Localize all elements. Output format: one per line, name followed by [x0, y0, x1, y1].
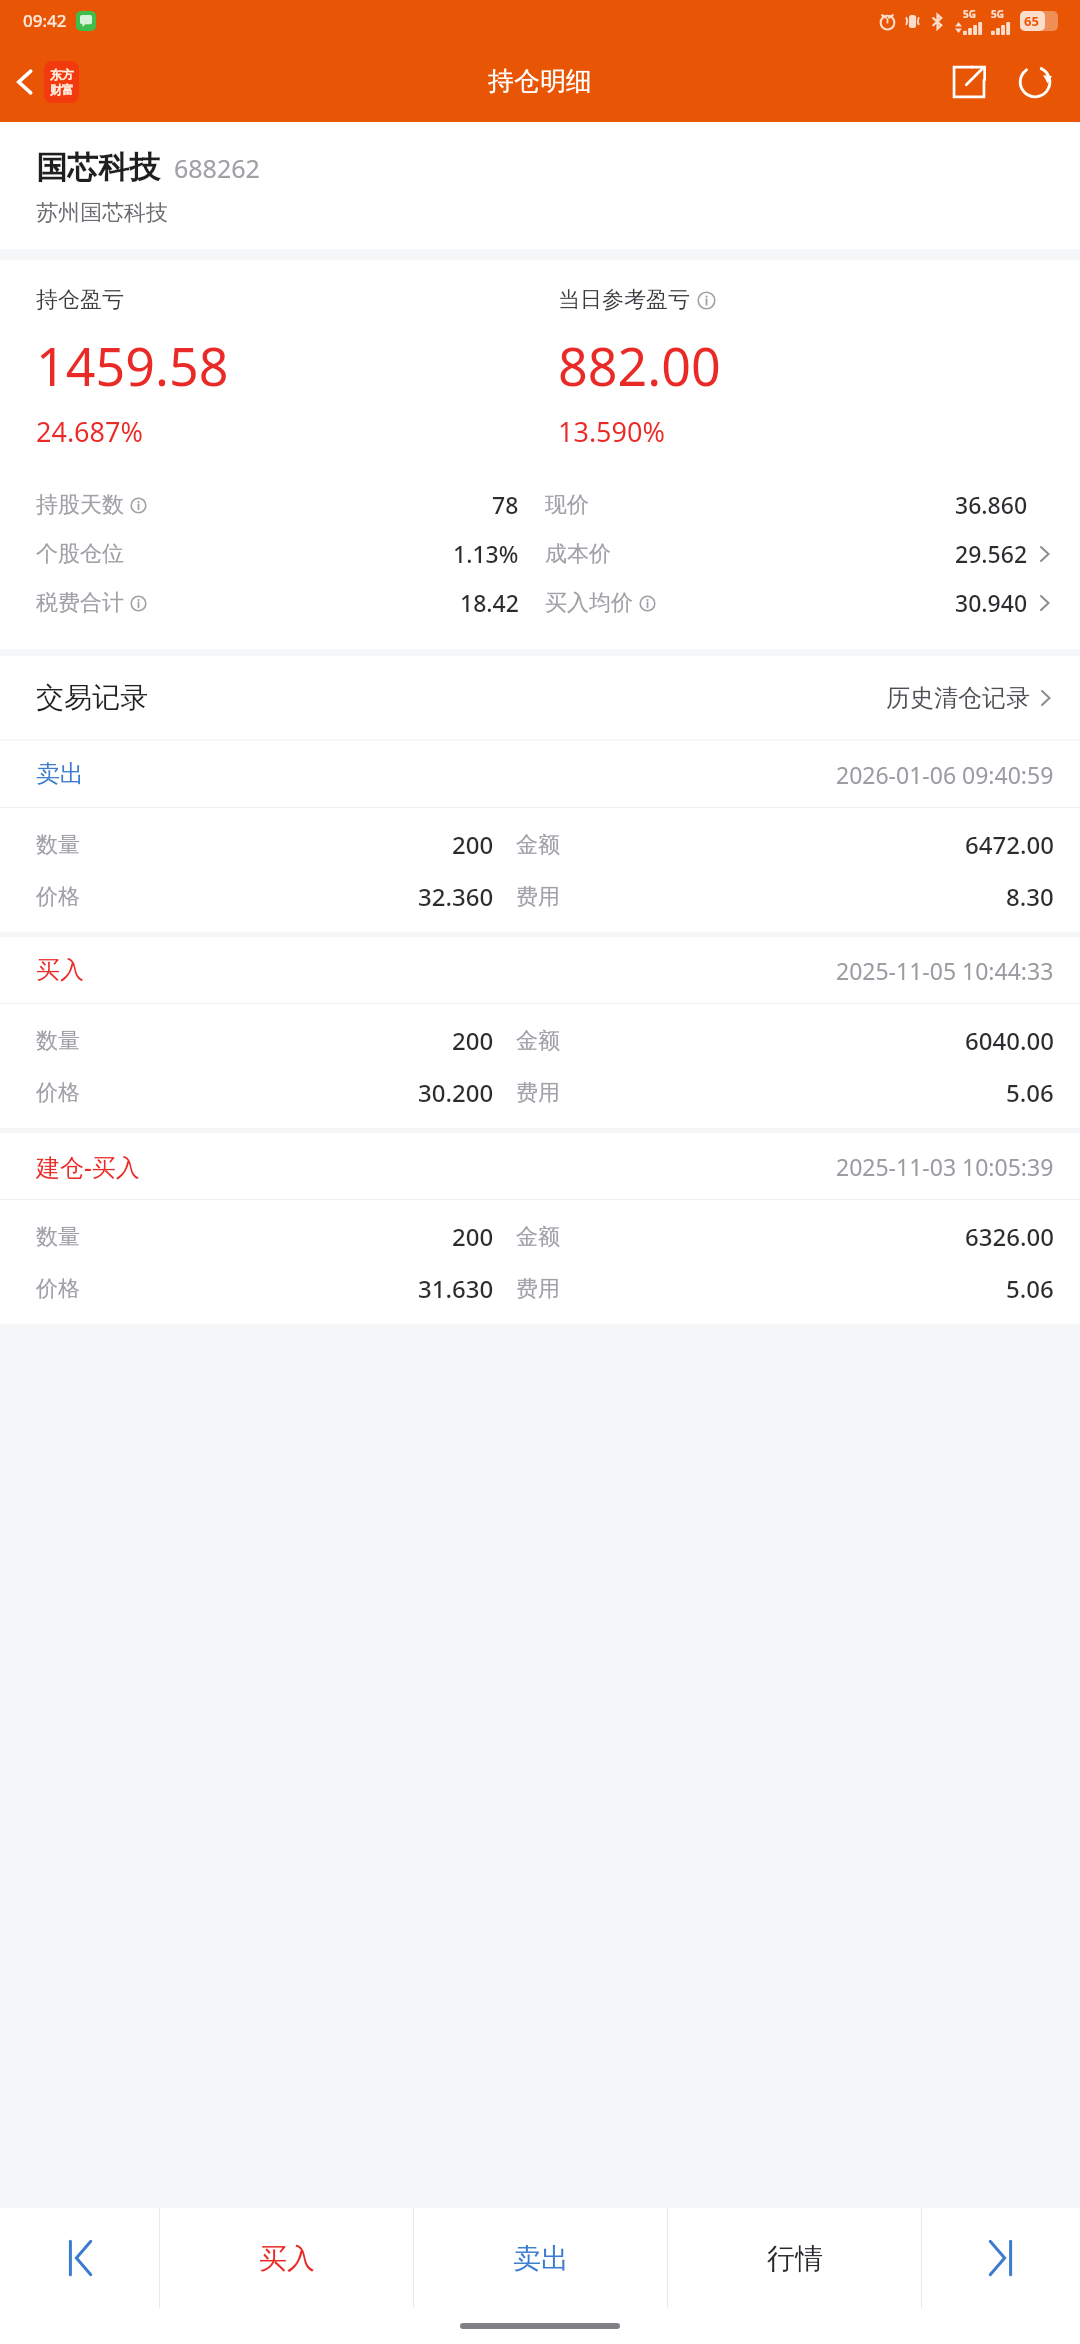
staticText: 持仓盈亏	[36, 286, 124, 314]
staticText: 交易记录	[36, 680, 148, 715]
staticText: 当日参考盈亏	[558, 286, 690, 314]
staticText: 金额	[516, 831, 560, 859]
staticText: 200	[452, 1024, 494, 1057]
staticText: 税费合计	[36, 589, 124, 617]
staticText: 6326.00	[965, 1220, 1054, 1253]
staticText: 36.860	[955, 489, 1028, 520]
staticText: 65	[1024, 12, 1039, 30]
staticText: 6040.00	[965, 1024, 1054, 1057]
staticText: 国芯科技	[36, 148, 160, 187]
staticText: 24.687%	[36, 413, 143, 450]
staticText: 6472.00	[965, 828, 1054, 861]
staticText: 200	[452, 1220, 494, 1253]
staticText: 2026-01-06 09:40:59	[836, 759, 1054, 790]
staticText: 18.42	[460, 587, 519, 618]
staticText: 2025-11-03 10:05:39	[836, 1151, 1054, 1182]
staticText: 成本价	[545, 540, 611, 568]
staticText: 30.940	[955, 587, 1028, 618]
staticText: 31.630	[418, 1272, 494, 1305]
staticText: 金额	[516, 1027, 560, 1055]
button[interactable]: 历史清仓记录	[886, 683, 1054, 713]
staticText: 卖出	[513, 2241, 569, 2276]
staticText: 1459.58	[36, 330, 229, 401]
staticText: 5.06	[1006, 1272, 1054, 1305]
staticText: 09:42	[23, 9, 67, 32]
staticText: 历史清仓记录	[886, 683, 1030, 713]
button[interactable]: 买入	[0, 937, 1080, 1128]
staticText: 价格	[36, 1275, 80, 1303]
staticText: 200	[452, 828, 494, 861]
staticText: 5G	[991, 7, 1004, 21]
staticText: 建仓-买入	[36, 1150, 140, 1183]
staticText: 卖出	[36, 759, 84, 789]
staticText: 持股天数	[36, 491, 124, 519]
staticText: 5G	[963, 7, 976, 21]
staticText: 价格	[36, 883, 80, 911]
button[interactable]: 买入	[160, 2208, 413, 2308]
staticText: 2025-11-05 10:44:33	[836, 955, 1054, 986]
button[interactable]: 国芯科技	[0, 122, 1080, 249]
button[interactable]: 上一个	[0, 2208, 159, 2308]
staticText: 数量	[36, 1223, 80, 1251]
staticText: 东方	[50, 67, 74, 82]
button[interactable]: 卖出	[0, 741, 1080, 932]
button[interactable]: 建仓-买入	[0, 1133, 1080, 1324]
staticText: 个股仓位	[36, 540, 124, 568]
staticText: 费用	[516, 1079, 560, 1107]
button[interactable]: 分享	[942, 55, 996, 109]
staticText: 苏州国芯科技	[36, 199, 168, 227]
staticText: 8.30	[1006, 880, 1054, 913]
staticText: 持仓明细	[488, 65, 592, 98]
staticText: 金额	[516, 1223, 560, 1251]
button[interactable]: 卖出	[414, 2208, 667, 2308]
staticText: 882.00	[558, 330, 721, 401]
staticText: 29.562	[955, 538, 1028, 569]
button[interactable]: 下一个	[922, 2208, 1080, 2308]
staticText: 费用	[516, 883, 560, 911]
staticText: 费用	[516, 1275, 560, 1303]
staticText: 行情	[767, 2241, 823, 2276]
staticText: 价格	[36, 1079, 80, 1107]
staticText: 买入	[259, 2241, 315, 2276]
staticText: 1.13%	[453, 538, 519, 569]
staticText: 买入	[36, 955, 84, 985]
staticText: 78	[492, 489, 519, 520]
button[interactable]: 返回 东方财富	[0, 55, 87, 109]
staticText: 688262	[174, 151, 260, 185]
button[interactable]: 刷新	[1008, 55, 1062, 109]
button[interactable]: 行情	[668, 2208, 921, 2308]
staticText: 13.590%	[558, 413, 665, 450]
button[interactable]: 买入均价	[545, 587, 1054, 618]
staticText: 财富	[50, 82, 74, 97]
staticText: 数量	[36, 1027, 80, 1055]
staticText: 5.06	[1006, 1076, 1054, 1109]
staticText: 30.200	[418, 1076, 494, 1109]
staticText: 现价	[545, 491, 589, 519]
staticText: 买入均价	[545, 589, 633, 617]
staticText: 数量	[36, 831, 80, 859]
button[interactable]: 成本价	[545, 538, 1054, 569]
staticText: 32.360	[418, 880, 494, 913]
